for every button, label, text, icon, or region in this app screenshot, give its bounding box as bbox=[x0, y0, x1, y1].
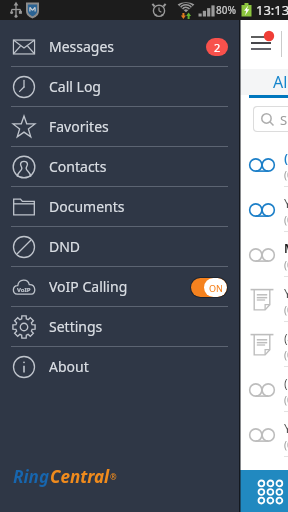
button[interactable]: Call Log bbox=[0, 67, 239, 107]
staticText: Yvonne Parker bbox=[284, 195, 288, 211]
button[interactable]: About bbox=[0, 347, 239, 387]
staticText: All bbox=[273, 71, 288, 93]
staticText: (00:13) Today bbox=[284, 168, 288, 182]
button[interactable]: Message Center bbox=[0, 232, 288, 277]
staticText: (00:13) Today bbox=[284, 438, 288, 452]
staticText: (00:13) Today bbox=[284, 348, 288, 362]
staticText: 80% bbox=[216, 3, 236, 17]
staticText: Call Log bbox=[49, 77, 101, 96]
button[interactable]: All bbox=[249, 69, 288, 95]
staticText: Favorites bbox=[49, 117, 109, 136]
staticText: (00:13) Today bbox=[284, 213, 288, 227]
button[interactable]: (888) 555-0123 bbox=[0, 367, 288, 412]
staticText: 2 bbox=[214, 40, 221, 55]
staticText: Yvonne Parker bbox=[284, 420, 288, 436]
button[interactable]: Messages bbox=[0, 27, 239, 67]
staticText: Message Center bbox=[284, 240, 288, 256]
button[interactable]: Favorites bbox=[0, 107, 239, 147]
staticText: VoIP bbox=[17, 286, 31, 294]
button[interactable]: Yvonne Parker bbox=[0, 187, 288, 232]
button[interactable]: Dial pad bbox=[0, 470, 288, 512]
staticText: ® bbox=[110, 471, 117, 482]
staticText: Yvonne Parker bbox=[284, 285, 288, 301]
button[interactable]: DND bbox=[0, 227, 239, 267]
staticText: DND bbox=[49, 237, 81, 256]
button[interactable]: (415) 555-0199 bbox=[0, 322, 288, 367]
button[interactable]: VoIP bbox=[0, 267, 239, 307]
staticText: (888) 555-0123 bbox=[284, 375, 288, 391]
button[interactable]: Contacts bbox=[0, 147, 239, 187]
staticText: (650) 555-0101 bbox=[284, 150, 288, 166]
staticText: About bbox=[49, 357, 89, 376]
staticText: Settings bbox=[49, 317, 103, 336]
staticText: Contacts bbox=[49, 157, 107, 176]
button[interactable]: VoIP Calling on bbox=[191, 278, 227, 297]
button[interactable]: Yvonne Parker bbox=[0, 277, 288, 322]
staticText: VoIP Calling bbox=[49, 277, 128, 296]
button[interactable]: Open navigation menu bbox=[248, 29, 274, 53]
button[interactable]: Search bbox=[254, 107, 288, 131]
staticText: 13:13 bbox=[256, 1, 288, 19]
staticText: Search bbox=[280, 111, 288, 129]
button[interactable]: Yvonne Parker bbox=[0, 412, 288, 457]
button[interactable]: Documents bbox=[0, 187, 239, 227]
button[interactable]: (650) 555-0101 bbox=[0, 142, 288, 187]
staticText: Messages bbox=[49, 37, 115, 56]
staticText: (415) 555-0199 bbox=[284, 330, 288, 346]
staticText: Ring bbox=[13, 465, 50, 488]
staticText: Documents bbox=[49, 197, 125, 216]
staticText: (00:13) Today bbox=[284, 303, 288, 317]
staticText: ON bbox=[209, 282, 223, 294]
staticText: (00:13) Today bbox=[284, 393, 288, 407]
staticText: (00:13) Today bbox=[284, 258, 288, 272]
staticText: Central bbox=[50, 465, 110, 488]
button[interactable]: Settings bbox=[0, 307, 239, 347]
